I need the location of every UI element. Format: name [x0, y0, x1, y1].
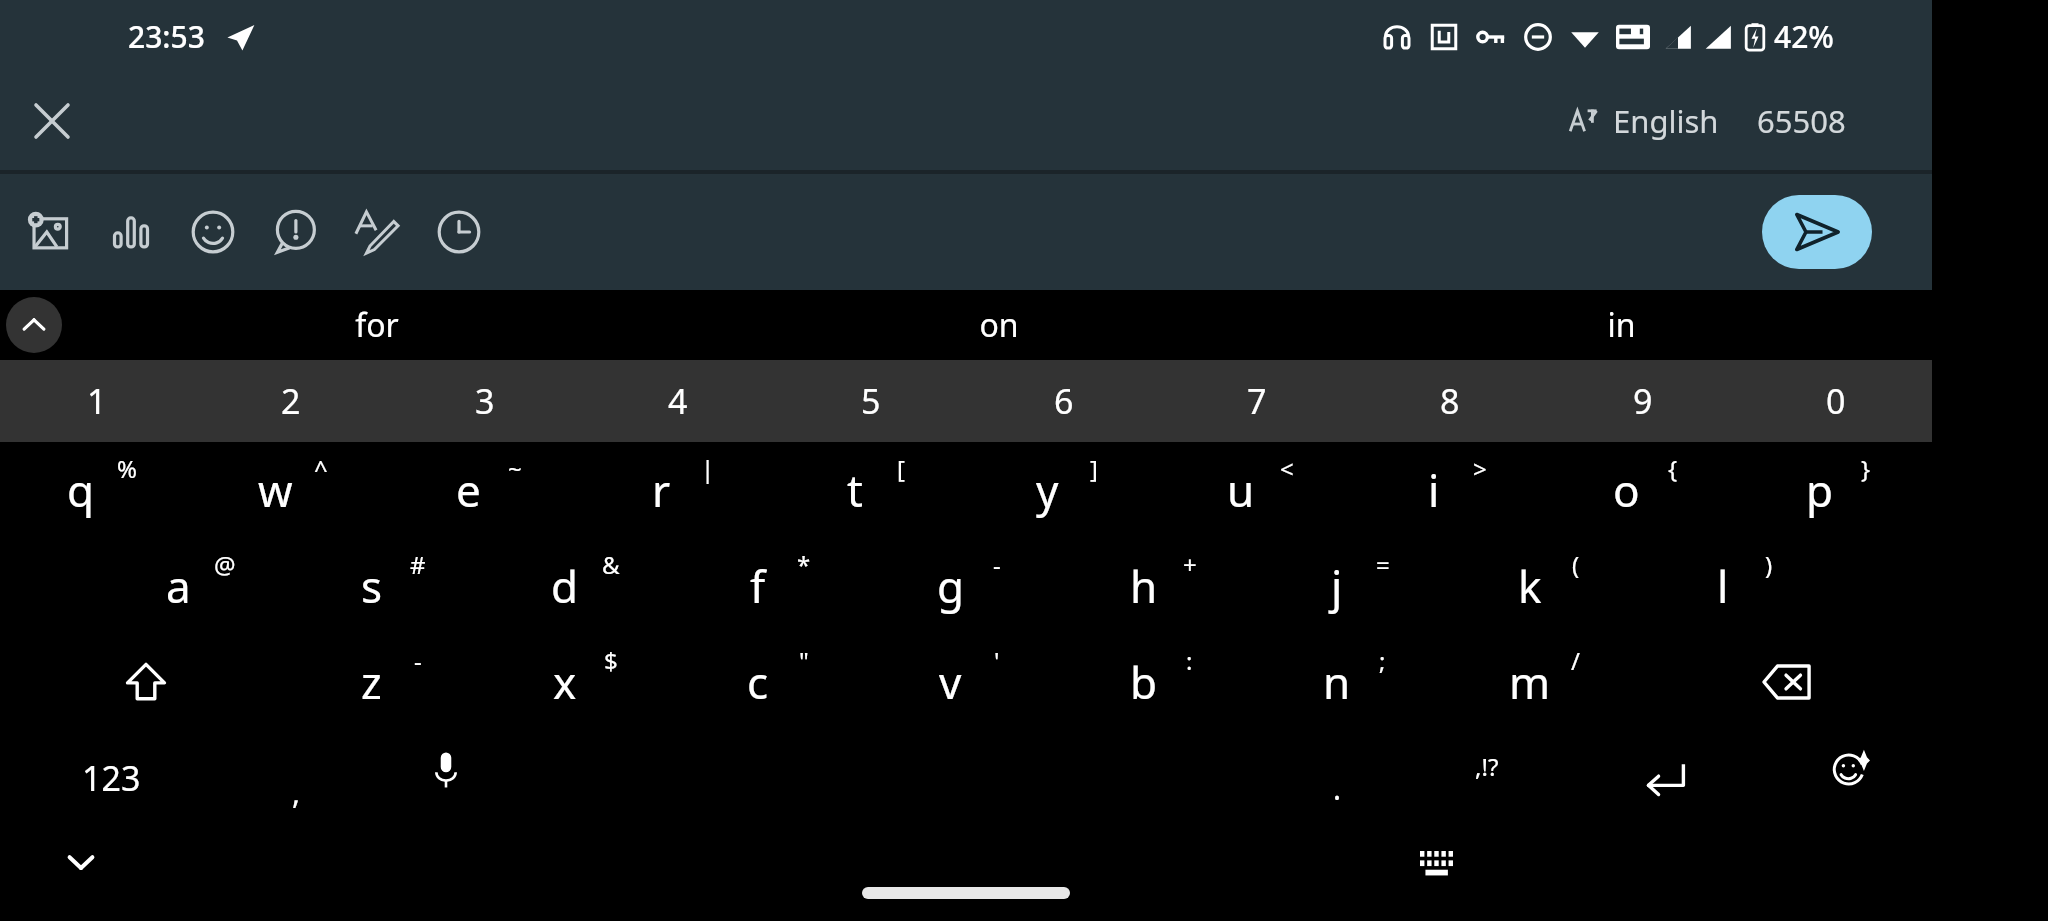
button[interactable]: n [1256, 634, 1449, 730]
button[interactable]: in [1310, 290, 1932, 360]
staticText: g [937, 556, 965, 616]
staticText: | [701, 452, 715, 485]
button[interactable]: Expand suggestions [6, 297, 62, 353]
button[interactable]: Shift [0, 634, 291, 730]
button[interactable]: Alert [254, 191, 336, 273]
button[interactable]: English [1563, 92, 1725, 150]
button[interactable]: Enter [1561, 730, 1769, 826]
staticText: * [797, 548, 811, 581]
button[interactable]: q [0, 442, 194, 538]
button[interactable]: x [484, 634, 677, 730]
button[interactable]: w [194, 442, 388, 538]
button[interactable]: Backspace [1642, 634, 1932, 730]
button[interactable]: j [1256, 538, 1449, 634]
staticText: i [1428, 460, 1440, 520]
staticText: s [361, 556, 383, 616]
staticText: % [117, 452, 137, 485]
staticText: 65508 [1757, 100, 1846, 142]
button[interactable]: z [291, 634, 484, 730]
staticText: t [847, 460, 863, 520]
button[interactable]: 9 [1546, 360, 1739, 442]
button[interactable]: Hide keyboard [50, 831, 112, 893]
button[interactable]: Emoji [1769, 730, 1932, 826]
button[interactable]: , [222, 730, 371, 826]
staticText: @ [214, 548, 236, 581]
button[interactable]: a [98, 538, 291, 634]
button[interactable]: Switch keyboard [1406, 833, 1468, 895]
button[interactable]: h [1063, 538, 1256, 634]
button[interactable]: 2 [194, 360, 388, 442]
button[interactable]: d [484, 538, 677, 634]
staticText: = [1376, 548, 1390, 581]
button[interactable]: on [688, 290, 1310, 360]
staticText: + [1183, 548, 1197, 581]
button[interactable]: 4 [581, 360, 774, 442]
button[interactable]: Send [1762, 195, 1872, 269]
staticText: ( [1572, 548, 1580, 581]
staticText: : [1186, 644, 1193, 677]
button[interactable]: for [66, 290, 688, 360]
button[interactable]: 7 [1160, 360, 1353, 442]
button[interactable]: o [1546, 442, 1739, 538]
staticText: k [1518, 556, 1542, 616]
staticText: English [1613, 100, 1719, 142]
staticText: / [1571, 644, 1580, 677]
staticText: 23:53 [128, 16, 205, 57]
button[interactable]: Schedule [418, 191, 500, 273]
staticText: for [355, 303, 399, 347]
staticText: f [750, 556, 766, 616]
staticText: ] [1090, 452, 1098, 485]
staticText: ) [1765, 548, 1773, 581]
button[interactable]: Format text [336, 191, 418, 273]
button[interactable]: 3 [388, 360, 581, 442]
button[interactable]: g [870, 538, 1063, 634]
staticText: l [1717, 556, 1729, 616]
staticText: { [1668, 452, 1678, 485]
button[interactable]: 123 [0, 730, 222, 826]
staticText: - [414, 644, 422, 677]
staticText: ' [994, 644, 1000, 677]
staticText: p [1806, 460, 1834, 520]
button[interactable]: y [967, 442, 1160, 538]
button[interactable]: s [291, 538, 484, 634]
button[interactable]: m [1449, 634, 1642, 730]
button[interactable]: . [1263, 730, 1412, 826]
button[interactable]: i [1353, 442, 1546, 538]
button[interactable]: Emoji [172, 191, 254, 273]
button[interactable]: c [677, 634, 870, 730]
button[interactable]: Add photo [8, 191, 90, 273]
button[interactable]: u [1160, 442, 1353, 538]
button[interactable]: Close [16, 85, 88, 157]
staticText: 5 [861, 378, 881, 424]
button[interactable]: b [1063, 634, 1256, 730]
button[interactable]: Home [862, 887, 1070, 899]
button[interactable]: v [870, 634, 1063, 730]
staticText: ; [1379, 644, 1386, 677]
button[interactable]: l [1642, 538, 1835, 634]
button[interactable]: f [677, 538, 870, 634]
staticText: y [1036, 460, 1059, 520]
button[interactable]: 6 [967, 360, 1160, 442]
button[interactable]: 1 [0, 360, 194, 442]
staticText: 6 [1054, 378, 1074, 424]
button[interactable]: p [1739, 442, 1932, 538]
button[interactable]: 65508 [1751, 92, 1852, 150]
staticText: 7 [1247, 378, 1267, 424]
staticText: # [410, 548, 426, 581]
staticText: w [258, 460, 293, 520]
button[interactable]: ,!? [1412, 730, 1561, 826]
button[interactable]: Poll [90, 191, 172, 273]
button[interactable]: 0 [1739, 360, 1932, 442]
staticText: j [1331, 556, 1343, 616]
staticText: " [799, 644, 809, 677]
staticText: n [1323, 652, 1351, 712]
button[interactable]: k [1449, 538, 1642, 634]
button[interactable]: r [581, 442, 774, 538]
staticText: 123 [82, 755, 141, 801]
button[interactable]: 5 [774, 360, 967, 442]
button[interactable]: Voice input [371, 730, 520, 826]
button[interactable]: t [774, 442, 967, 538]
button[interactable]: e [388, 442, 581, 538]
button[interactable]: 8 [1353, 360, 1546, 442]
